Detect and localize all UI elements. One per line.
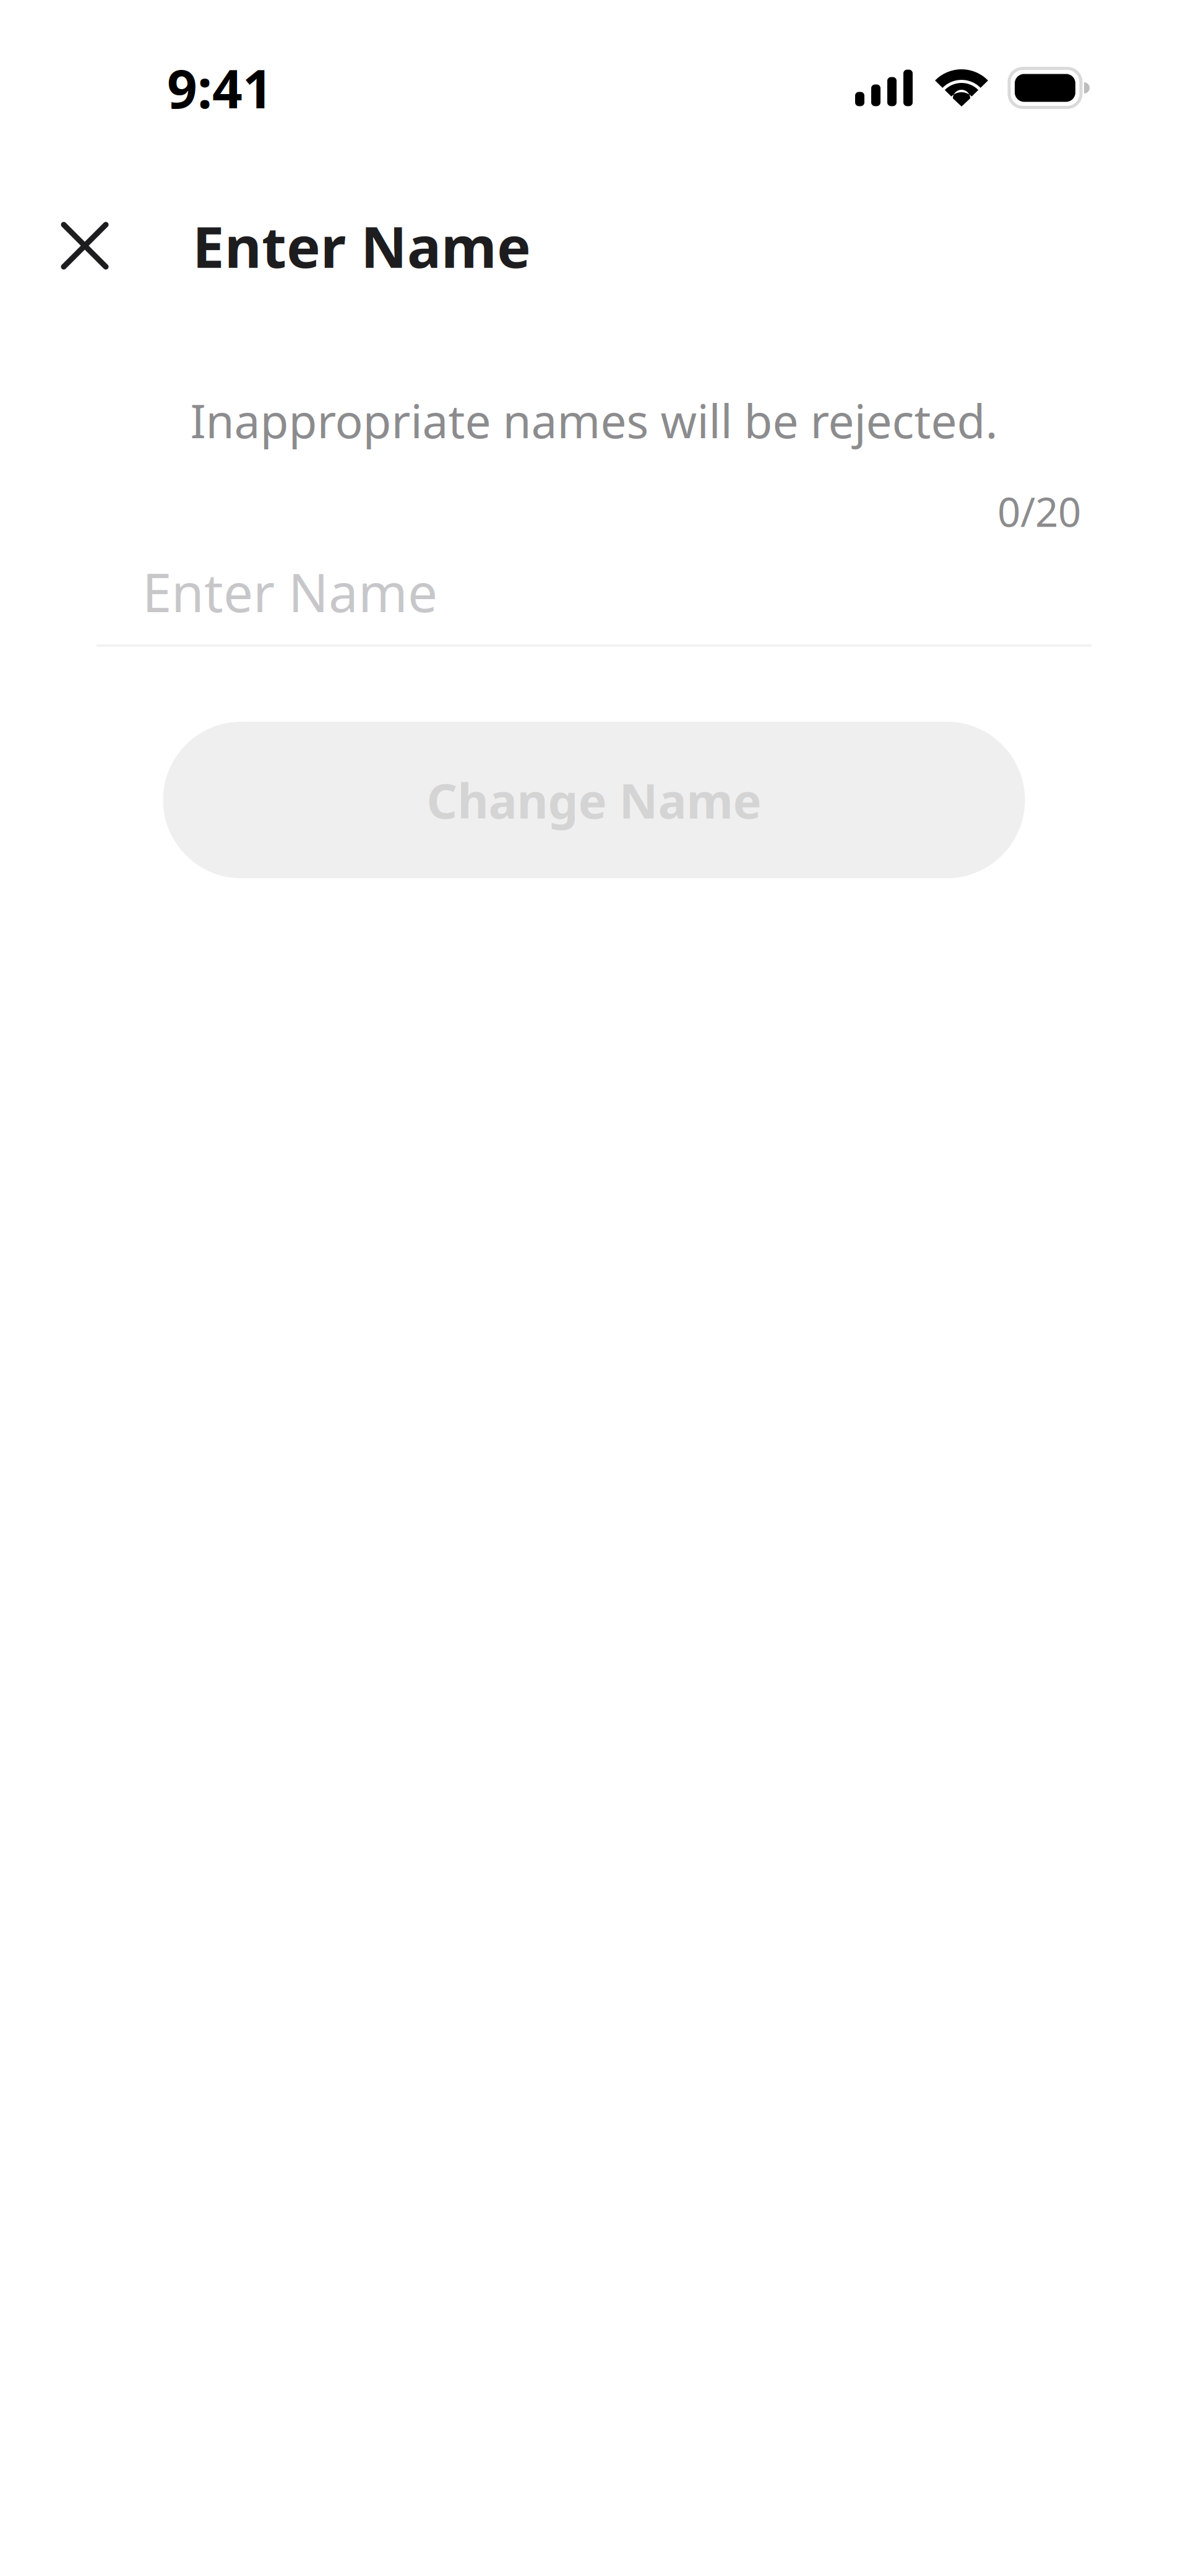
textField[interactable]: Enter Name	[97, 564, 1091, 647]
staticText: Change Name	[427, 768, 761, 832]
button[interactable]: Change Name	[163, 722, 1025, 878]
staticText: Inappropriate names will be rejected.	[190, 390, 998, 451]
button[interactable]: Close	[35, 209, 134, 283]
staticText: 0/20	[997, 484, 1081, 538]
staticText: Enter Name	[142, 557, 437, 627]
staticText: Enter Name	[192, 208, 531, 284]
staticText: 9:41	[167, 53, 273, 123]
